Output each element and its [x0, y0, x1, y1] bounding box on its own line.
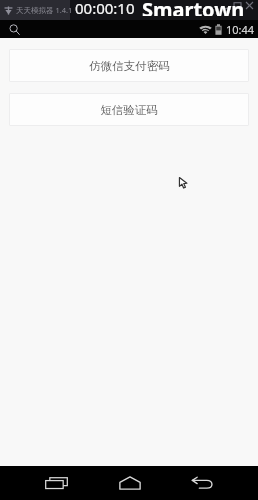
button[interactable]: Search [6, 21, 22, 37]
staticText: 仿微信支付密码 [89, 59, 170, 73]
button[interactable]: Home [114, 467, 146, 499]
button[interactable]: 仿微信支付密码 [9, 49, 249, 82]
staticText: 00:00:10 [75, 0, 135, 18]
staticText: Smartown [142, 0, 245, 16]
staticText: 短信验证码 [100, 103, 158, 117]
staticText: 10:44 [226, 22, 255, 37]
button[interactable]: Back [186, 467, 218, 499]
staticText: 天天模拟器 1.4.1 [16, 5, 73, 15]
button[interactable]: 短信验证码 [9, 93, 249, 126]
button[interactable]: Recent apps [40, 467, 72, 499]
